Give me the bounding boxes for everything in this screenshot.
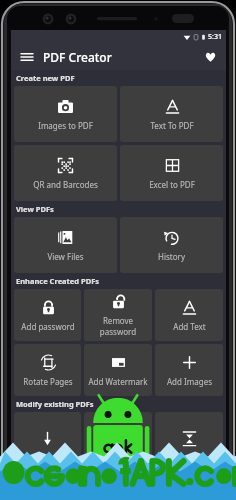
button[interactable]: QR and Barcodes bbox=[14, 145, 117, 201]
button[interactable]: Add Images bbox=[155, 344, 223, 396]
button[interactable]: Images to PDF bbox=[14, 86, 117, 142]
button[interactable]: Text To PDF bbox=[120, 86, 223, 142]
staticText: Add Text bbox=[173, 321, 206, 332]
button[interactable]: Add password bbox=[14, 289, 81, 341]
button[interactable]: PDF action bbox=[155, 412, 223, 464]
staticText: Images to PDF bbox=[38, 120, 93, 131]
staticText: Create new PDF bbox=[16, 73, 75, 83]
staticText: Excel to PDF bbox=[149, 179, 195, 190]
staticText: Add Watermark bbox=[88, 376, 148, 387]
button[interactable]: Add Watermark bbox=[84, 344, 152, 396]
button[interactable]: Excel to PDF bbox=[120, 145, 223, 201]
staticText: QR and Barcodes bbox=[33, 179, 98, 190]
button[interactable]: Rotate Pages bbox=[14, 344, 81, 396]
staticText: History bbox=[158, 251, 185, 262]
button[interactable]: PDF action bbox=[14, 412, 81, 464]
button[interactable]: View Files bbox=[14, 217, 117, 273]
staticText: View Files bbox=[47, 251, 84, 262]
button[interactable]: Remove password bbox=[84, 289, 152, 341]
staticText: Text To PDF bbox=[150, 120, 194, 131]
button[interactable]: Add Text bbox=[155, 289, 223, 341]
button[interactable]: Favorites bbox=[200, 47, 220, 67]
staticText: Remove password bbox=[84, 315, 152, 337]
staticText: PDF Creator bbox=[43, 49, 112, 65]
staticText: Enhance Created PDFs bbox=[16, 276, 100, 286]
staticText: View PDFs bbox=[16, 204, 54, 214]
button[interactable]: Open navigation menu bbox=[17, 47, 37, 67]
staticText: Modify existing PDFs bbox=[16, 399, 94, 409]
staticText: Add password bbox=[21, 321, 75, 332]
staticText: Rotate Pages bbox=[23, 376, 73, 387]
staticText: 5:31 bbox=[208, 32, 222, 42]
button[interactable]: PDF action bbox=[84, 412, 152, 464]
staticText: Add Images bbox=[167, 376, 212, 387]
button[interactable]: History bbox=[120, 217, 223, 273]
